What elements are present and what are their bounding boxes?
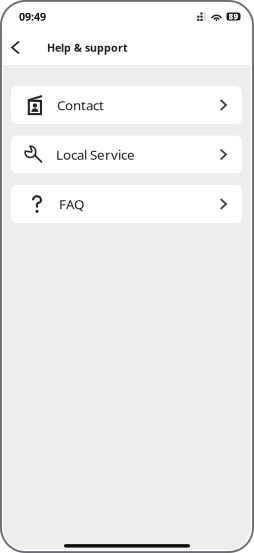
staticText: Local Service [56, 146, 135, 163]
staticText: FAQ [59, 195, 84, 213]
button[interactable]: Back [6, 33, 25, 61]
button[interactable]: Contact [11, 86, 242, 124]
staticText: 09:49 [19, 9, 46, 24]
staticText: 89 [228, 11, 238, 22]
button[interactable]: Local Service [11, 135, 242, 173]
staticText: Help & support [47, 40, 128, 55]
staticText: Contact [57, 96, 104, 114]
button[interactable]: FAQ [11, 185, 242, 223]
